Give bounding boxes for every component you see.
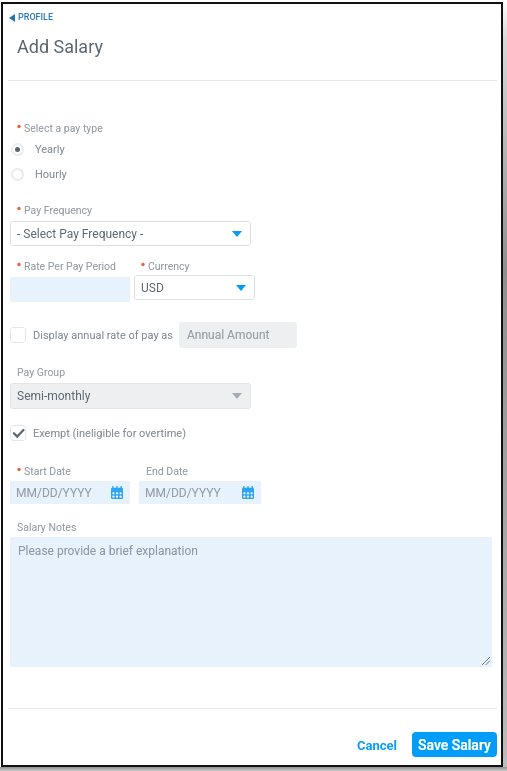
staticText: Salary Notes: [17, 521, 77, 533]
button[interactable]: Start date: [10, 481, 130, 504]
button[interactable]: Cancel: [348, 732, 406, 759]
button[interactable]: Checked: [10, 425, 186, 441]
button[interactable]: Salary notes: [10, 537, 492, 667]
staticText: USD: [141, 281, 164, 295]
staticText: Pay Frequency: [24, 204, 93, 216]
staticText: PROFILE: [18, 12, 54, 23]
staticText: Rate Per Pay Period: [24, 260, 116, 272]
button[interactable]: Checked: [10, 425, 26, 441]
button[interactable]: End date: [139, 481, 261, 504]
staticText: Start Date: [24, 465, 71, 477]
button[interactable]: Semi-monthly: [10, 383, 251, 409]
staticText: - Select Pay Frequency -: [17, 227, 144, 241]
staticText: Save Salary: [418, 737, 491, 753]
staticText: Exempt (ineligible for overtime): [33, 427, 186, 440]
staticText: Display annual rate of pay as: [33, 329, 173, 342]
button[interactable]: - Select Pay Frequency -: [10, 221, 251, 246]
button[interactable]: Yearly: [11, 143, 65, 156]
staticText: Please provide a brief explanation: [18, 544, 198, 558]
staticText: Hourly: [35, 168, 67, 181]
staticText: End Date: [146, 465, 188, 477]
staticText: Semi-monthly: [17, 389, 91, 403]
staticText: Add Salary: [17, 36, 103, 57]
button[interactable]: Hourly: [11, 168, 67, 181]
button[interactable]: PROFILE: [9, 12, 54, 23]
button[interactable]: USD: [134, 275, 255, 300]
staticText: Yearly: [35, 143, 65, 156]
staticText: Pay Group: [17, 366, 66, 378]
staticText: Annual Amount: [187, 328, 270, 342]
button[interactable]: Annual Amount: [179, 322, 297, 348]
staticText: MM/DD/YYYY: [16, 486, 92, 500]
button[interactable]: Save Salary: [412, 732, 497, 757]
button[interactable]: Unchecked: [10, 327, 26, 343]
staticText: Select a pay type: [24, 122, 103, 134]
staticText: MM/DD/YYYY: [145, 486, 221, 500]
staticText: Currency: [148, 260, 190, 272]
staticText: Cancel: [357, 738, 397, 753]
